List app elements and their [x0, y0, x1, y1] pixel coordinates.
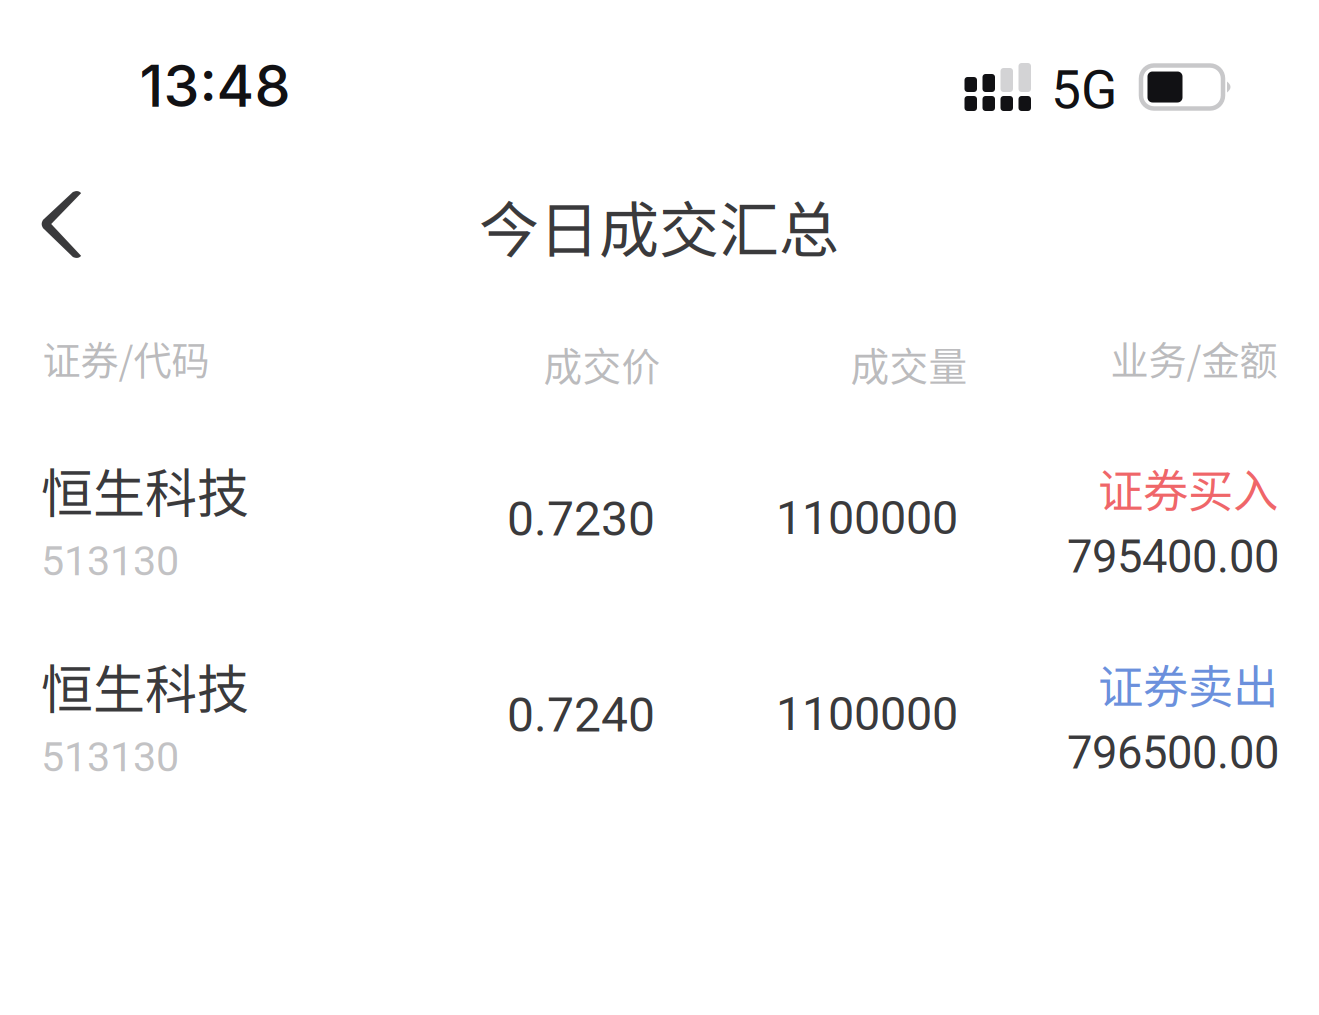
staticText: 1100000	[776, 491, 958, 545]
staticText: 恒生科技	[41, 648, 249, 724]
staticText: 513130	[41, 537, 179, 585]
button[interactable]: Back	[6, 163, 118, 287]
staticText: 成交量	[850, 336, 967, 392]
staticText: 1100000	[776, 687, 958, 741]
staticText: 证券/代码	[42, 330, 209, 386]
button[interactable]: 恒生科技	[0, 626, 1319, 822]
staticText: 业务/金额	[1110, 330, 1277, 386]
staticText: 0.7230	[507, 491, 655, 547]
staticText: 513130	[41, 733, 179, 781]
staticText: 成交价	[543, 336, 660, 392]
staticText: 13:48	[139, 51, 290, 121]
staticText: 证券买入	[1098, 455, 1278, 521]
staticText: 今日成交汇总	[479, 183, 839, 269]
staticText: 795400.00	[1067, 530, 1279, 583]
staticText: 恒生科技	[41, 452, 249, 528]
button[interactable]: 恒生科技	[0, 430, 1319, 626]
staticText: 796500.00	[1067, 726, 1279, 779]
staticText: 证券卖出	[1098, 651, 1278, 717]
staticText: 5G	[1051, 59, 1117, 121]
staticText: 0.7240	[507, 687, 655, 743]
